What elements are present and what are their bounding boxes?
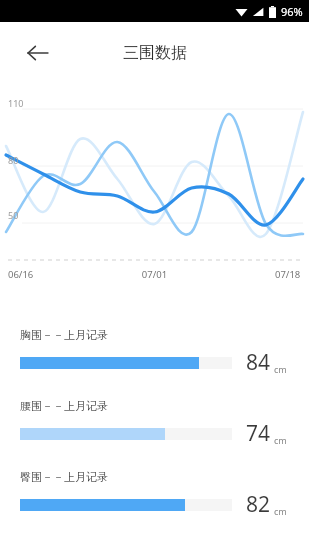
button[interactable]: 臀围－－上月记录 xyxy=(0,470,309,519)
staticText: cm xyxy=(274,505,287,517)
staticText: 74 xyxy=(246,419,271,448)
staticText: cm xyxy=(274,363,287,375)
staticText: 07/18 xyxy=(275,268,301,281)
staticText: 50 xyxy=(8,209,19,221)
staticText: 06/16 xyxy=(8,268,34,281)
staticText: 82 xyxy=(246,490,271,519)
staticText: 96% xyxy=(281,4,303,19)
staticText: 胸围－－上月记录 xyxy=(20,328,108,342)
staticText: 腰围－－上月记录 xyxy=(20,399,108,413)
button[interactable]: 胸围－－上月记录 xyxy=(0,328,309,377)
staticText: 110 xyxy=(8,97,24,109)
button[interactable]: Back xyxy=(18,33,58,73)
staticText: 84 xyxy=(246,348,271,377)
staticText: 臀围－－上月记录 xyxy=(20,470,108,484)
button[interactable]: 腰围－－上月记录 xyxy=(0,399,309,448)
staticText: 三围数据 xyxy=(123,43,187,63)
staticText: 07/01 xyxy=(34,268,275,281)
staticText: 80 xyxy=(8,154,19,166)
staticText: cm xyxy=(274,434,287,446)
